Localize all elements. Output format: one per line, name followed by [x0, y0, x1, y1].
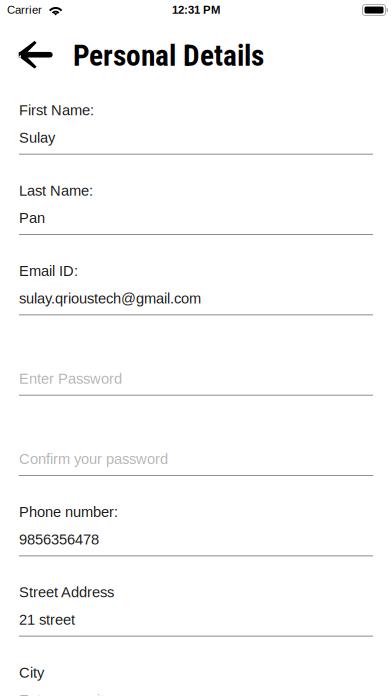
- staticText: Carrier: [7, 3, 42, 16]
- staticText: Enter your city: [19, 692, 111, 696]
- button[interactable]: City: [19, 635, 373, 696]
- staticText: Sulay: [19, 129, 55, 146]
- button[interactable]: Email ID:: [19, 233, 373, 313]
- staticText: Street Address: [19, 584, 114, 600]
- staticText: Enter Password: [19, 370, 122, 387]
- staticText: Last Name:: [19, 182, 93, 199]
- button[interactable]: First Name:: [19, 72, 373, 153]
- staticText: Personal Details: [73, 38, 264, 73]
- button[interactable]: Phone number:: [19, 474, 373, 554]
- staticText: 21 street: [19, 611, 75, 628]
- button[interactable]: [19, 313, 373, 394]
- staticText: sulay.qrioustech@gmail.com: [19, 290, 201, 307]
- staticText: 9856356478: [19, 531, 99, 547]
- staticText: Confirm your password: [19, 451, 168, 467]
- button[interactable]: Last Name:: [19, 153, 373, 233]
- button[interactable]: Back: [0, 19, 73, 72]
- staticText: Pan: [19, 210, 45, 226]
- staticText: Phone number:: [19, 504, 118, 520]
- staticText: 12:31 PM: [172, 3, 220, 16]
- button[interactable]: [19, 394, 373, 474]
- staticText: Email ID:: [19, 263, 78, 279]
- button[interactable]: Street Address: [19, 554, 373, 635]
- staticText: First Name:: [19, 102, 94, 118]
- staticText: City: [19, 664, 44, 681]
